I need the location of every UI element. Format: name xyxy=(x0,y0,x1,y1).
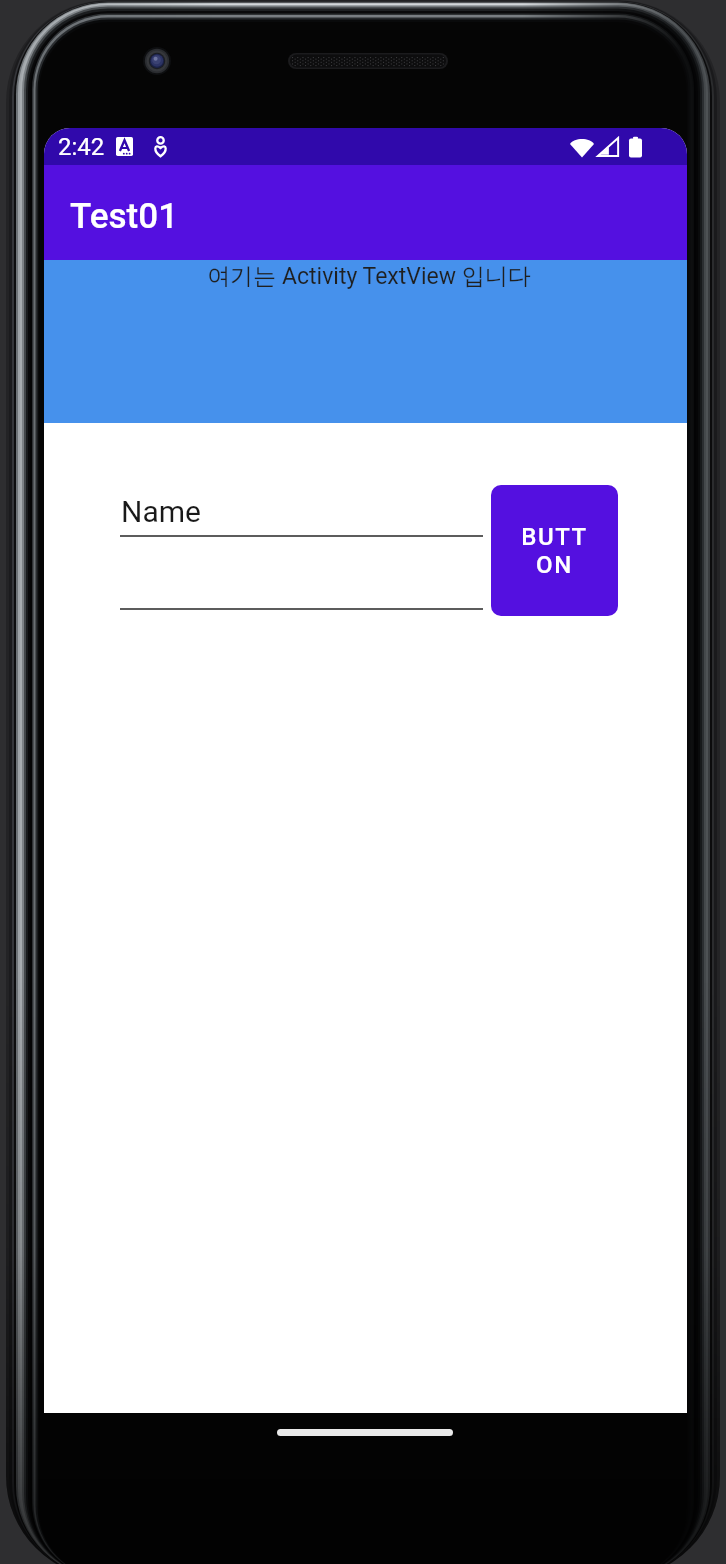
other: Captions xyxy=(116,137,133,156)
button[interactable]: Text field xyxy=(120,558,483,610)
button[interactable]: Name xyxy=(120,485,483,537)
staticText: BUTT ON xyxy=(521,523,588,579)
staticText: Name xyxy=(121,494,201,529)
button[interactable]: BUTT ON xyxy=(491,485,618,616)
staticText: Test01 xyxy=(70,196,179,237)
staticText: 여기는 Activity TextView 입니다 xyxy=(207,262,531,291)
button[interactable]: Home xyxy=(265,1418,465,1446)
staticText: 2:42 xyxy=(58,133,105,161)
